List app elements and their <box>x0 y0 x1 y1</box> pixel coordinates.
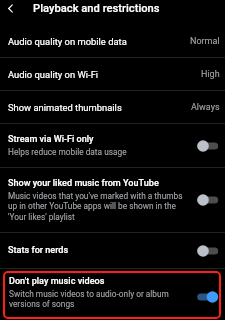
staticText: Audio quality on Wi-Fi <box>8 69 99 80</box>
button[interactable]: Back <box>0 0 21 17</box>
staticText: Helps reduce mobile data usage <box>8 147 127 157</box>
staticText: Show your liked music from YouTube <box>8 178 159 189</box>
button[interactable]: Toggle off <box>196 192 220 208</box>
button[interactable]: Toggle off <box>196 138 220 154</box>
staticText: Playback and restrictions <box>33 2 160 15</box>
staticText: Don't play music videos <box>9 276 105 287</box>
button[interactable]: Audio quality on mobile data <box>0 25 225 57</box>
staticText: Always <box>191 102 220 113</box>
staticText: High <box>201 69 220 80</box>
staticText: Stream via Wi-Fi only <box>8 134 94 145</box>
staticText: Audio quality on mobile data <box>8 36 127 47</box>
button[interactable]: Don't play music videos <box>3 271 221 319</box>
staticText: Music videos that you've marked with a t… <box>8 191 185 222</box>
button[interactable]: Toggle on <box>196 289 220 305</box>
button[interactable]: Audio quality on Wi-Fi <box>0 58 225 90</box>
staticText: Switch music videos to audio-only or alb… <box>9 289 187 309</box>
button[interactable]: Show animated thumbnails <box>0 91 225 123</box>
staticText: Stats for nerds <box>8 245 69 256</box>
staticText: Show animated thumbnails <box>8 102 122 113</box>
button[interactable]: Stats for nerds <box>0 233 225 268</box>
button[interactable]: Toggle off <box>196 243 220 259</box>
staticText: Normal <box>190 36 220 47</box>
button[interactable]: Show your liked music from YouTube <box>0 168 225 232</box>
button[interactable]: Stream via Wi-Fi only <box>0 124 225 167</box>
